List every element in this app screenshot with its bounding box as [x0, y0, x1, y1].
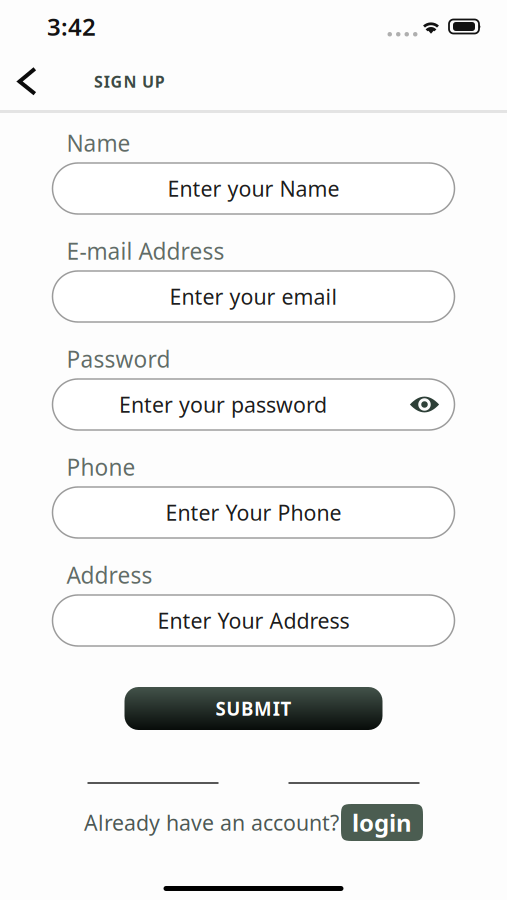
staticText: login	[352, 807, 412, 838]
button[interactable]: Enter your Name	[52, 163, 454, 214]
staticText: Enter Your Address	[157, 606, 349, 635]
staticText: Address	[66, 560, 152, 590]
button[interactable]: SUBMIT	[124, 687, 382, 730]
button[interactable]: Enter your password	[52, 379, 454, 430]
staticText: Name	[66, 128, 130, 158]
staticText: Password	[66, 344, 170, 374]
staticText: E-mail Address	[66, 236, 224, 266]
button[interactable]: Back	[4, 56, 50, 106]
staticText: Enter your Name	[167, 174, 339, 203]
staticText: Enter your password	[119, 390, 327, 419]
button[interactable]: Enter your email	[52, 271, 454, 322]
button[interactable]: Enter Your Phone	[52, 487, 454, 538]
staticText: SUBMIT	[215, 696, 291, 721]
staticText: Enter your email	[169, 282, 337, 311]
button[interactable]: login	[341, 804, 423, 841]
staticText: Already have an account?	[84, 808, 339, 837]
staticText: 3:42	[47, 11, 96, 42]
button[interactable]: Enter Your Address	[52, 595, 454, 646]
staticText: SIGN UP	[94, 71, 165, 92]
staticText: Phone	[66, 452, 135, 482]
staticText: Enter Your Phone	[165, 498, 341, 527]
